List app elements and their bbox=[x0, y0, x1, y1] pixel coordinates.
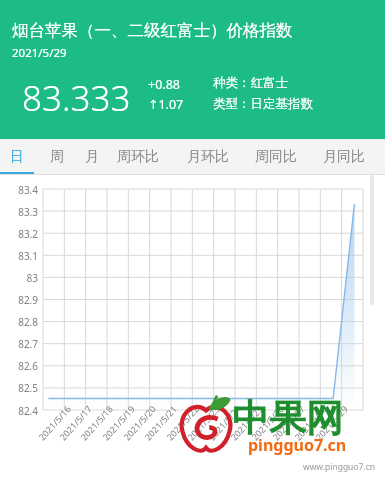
staticText: 月 bbox=[85, 148, 99, 166]
staticText: 中果网 bbox=[232, 395, 343, 442]
staticText: 82.7 bbox=[18, 337, 38, 351]
staticText: 83.1 bbox=[18, 249, 38, 263]
button[interactable]: 月 bbox=[75, 139, 109, 175]
staticText: 日 bbox=[10, 148, 24, 166]
staticText: 82.9 bbox=[18, 293, 38, 307]
staticText: 种类：红富士 bbox=[213, 75, 288, 91]
staticText: 月同比 bbox=[323, 148, 365, 166]
staticText: pingguo7.cn bbox=[248, 434, 347, 456]
staticText: 83.2 bbox=[18, 227, 38, 241]
staticText: 类型：日定基指数 bbox=[213, 96, 313, 112]
staticText: 82.8 bbox=[18, 315, 38, 329]
staticText: 2021/5/18 bbox=[77, 403, 115, 443]
button[interactable]: 周环比 bbox=[110, 139, 165, 175]
staticText: 2021/5/20 bbox=[120, 403, 158, 443]
staticText: 烟台苹果（一、二级红富士）价格指数 bbox=[12, 20, 293, 41]
button[interactable]: 月同比 bbox=[316, 139, 371, 175]
staticText: 月环比 bbox=[187, 148, 229, 166]
staticText: 82.6 bbox=[18, 359, 38, 373]
staticText: 2021/5/29 bbox=[312, 403, 350, 443]
staticText: 2021/5/22 bbox=[163, 403, 201, 443]
staticText: 82.4 bbox=[18, 404, 38, 418]
button[interactable]: 日 bbox=[0, 139, 34, 175]
staticText: 2021/5/23 bbox=[184, 403, 222, 443]
button[interactable]: 月环比 bbox=[180, 139, 235, 175]
staticText: 2021/5/16 bbox=[35, 403, 73, 443]
staticText: 2021/5/25 bbox=[227, 403, 265, 443]
staticText: 2021/5/29 bbox=[12, 45, 67, 61]
staticText: 2021/5/21 bbox=[141, 403, 179, 443]
button[interactable]: 周同比 bbox=[248, 139, 303, 175]
staticText: 2021/5/19 bbox=[99, 403, 137, 443]
staticText: 2021/5/27 bbox=[269, 403, 307, 443]
staticText: 周同比 bbox=[255, 148, 297, 166]
staticText: 2021/5/24 bbox=[205, 403, 243, 443]
staticText: 83.333 bbox=[22, 74, 131, 122]
staticText: 2021/5/17 bbox=[56, 403, 94, 443]
staticText: 83.3 bbox=[18, 205, 38, 219]
staticText: ↑1.07 bbox=[148, 96, 184, 113]
staticText: 83 bbox=[26, 271, 38, 285]
staticText: +0.88 bbox=[148, 76, 180, 93]
staticText: 82.5 bbox=[18, 381, 38, 395]
staticText: 83.4 bbox=[18, 183, 38, 197]
staticText: 2021/5/26 bbox=[248, 403, 286, 443]
staticText: www.pingguo7.cn bbox=[303, 461, 375, 473]
staticText: 周 bbox=[50, 148, 64, 166]
staticText: 周环比 bbox=[117, 148, 159, 166]
staticText: 2021/5/28 bbox=[291, 403, 329, 443]
button[interactable]: 周 bbox=[40, 139, 74, 175]
